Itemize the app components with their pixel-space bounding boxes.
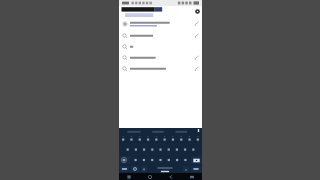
- button[interactable]: [119, 145, 202, 155]
- button[interactable]: Insert suggestion: [119, 17, 202, 30]
- button[interactable]: Keyboard settings: [197, 129, 200, 132]
- button[interactable]: Insert suggestion: [194, 21, 200, 27]
- button[interactable]: [119, 41, 202, 52]
- button[interactable]: Comma: [141, 166, 147, 172]
- button[interactable]: [119, 135, 202, 145]
- button[interactable]: Symbols: [120, 166, 129, 172]
- button[interactable]: Clear search: [195, 9, 200, 14]
- button[interactable]: Keyboard settings: [119, 128, 202, 135]
- button[interactable]: Home: [139, 173, 160, 180]
- button[interactable]: Back: [160, 173, 181, 180]
- button[interactable]: Keyboard: [181, 173, 202, 180]
- button[interactable]: Insert suggestion: [119, 52, 202, 63]
- button[interactable]: Search: [191, 166, 201, 172]
- button[interactable]: Shift: [120, 156, 128, 164]
- button[interactable]: Insert suggestion: [194, 55, 200, 61]
- button[interactable]: Insert suggestion: [119, 63, 202, 74]
- button[interactable]: Insert suggestion: [194, 66, 200, 72]
- button[interactable]: Space: [148, 165, 182, 173]
- button[interactable]: Backspace: [192, 156, 201, 165]
- button[interactable]: Emoji: [131, 166, 139, 172]
- button[interactable]: Clear search: [119, 6, 202, 17]
- button[interactable]: Period: [183, 166, 189, 172]
- button[interactable]: Insert suggestion: [119, 30, 202, 41]
- button[interactable]: Insert suggestion: [194, 33, 200, 39]
- button[interactable]: Recents: [119, 173, 139, 180]
